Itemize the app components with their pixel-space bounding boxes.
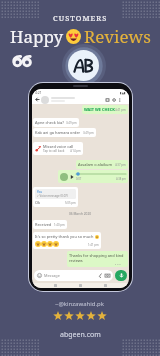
staticText: 3:49 pm	[66, 121, 77, 125]
button[interactable]: Back	[34, 96, 41, 103]
staticText: Received	[35, 222, 52, 227]
button[interactable]: It's so pretty thank you so much	[35, 234, 99, 247]
staticText: 4:41 pm	[115, 108, 126, 112]
staticText: Assalam o alaikum	[78, 162, 113, 167]
button[interactable]: Received	[35, 222, 65, 227]
staticText: It's so pretty thank you so much	[35, 234, 94, 239]
staticText: Kab aei ga hamara order	[35, 130, 81, 135]
button[interactable]: You	[35, 189, 76, 205]
staticText: You	[37, 190, 43, 194]
staticText: Apne check kia?	[35, 120, 64, 125]
button[interactable]: Missed voice call	[35, 144, 81, 153]
staticText: 4:38 pm	[116, 177, 126, 181]
staticText: 06 March 2020	[69, 212, 92, 216]
staticText: Ok	[35, 200, 41, 205]
staticText: abgeen.com	[60, 330, 101, 340]
button[interactable]: Assalam o alaikum	[78, 162, 126, 167]
button[interactable]: Record voice message	[115, 270, 127, 281]
button[interactable]: 0:07	[60, 172, 126, 181]
staticText: 5:05 pm	[65, 201, 76, 205]
button[interactable]: Call options	[106, 97, 126, 103]
button[interactable]: Apne check kia?	[35, 120, 77, 125]
button[interactable]: Kab aei ga hamara order	[35, 130, 94, 135]
staticText: WAIT WE CHECK	[84, 107, 115, 112]
staticText: CUSTOMERS	[53, 13, 108, 23]
staticText: Thanks for shopping and kind reviews	[69, 253, 126, 264]
staticText: 3:49 pm	[83, 131, 94, 135]
staticText: 1:52 pm	[115, 264, 126, 265]
button[interactable]: WAIT WE CHECK	[84, 107, 126, 112]
staticText: 1:40 pm	[54, 223, 65, 227]
staticText: Tap to call back	[43, 149, 65, 153]
staticText: 1:41 pm	[88, 243, 99, 247]
button[interactable]: Thanks for shopping and kind reviews	[69, 253, 126, 265]
staticText: ~@kinzawahid.pk	[55, 300, 105, 308]
staticText: ▮▲▮	[120, 91, 126, 94]
staticText: Message	[44, 273, 60, 278]
staticText: 4:21	[35, 90, 42, 95]
button[interactable]: Message	[37, 270, 110, 281]
staticText: 4:14 pm	[70, 149, 81, 153]
staticText: Happy	[10, 25, 64, 48]
staticText: Reviews	[84, 25, 151, 48]
staticText: ♪ Voice message (0:07)	[37, 194, 68, 198]
staticText: 4:37 pm	[115, 163, 126, 167]
staticText: 0:07	[76, 177, 82, 181]
staticText: Missed voice call	[43, 144, 74, 149]
